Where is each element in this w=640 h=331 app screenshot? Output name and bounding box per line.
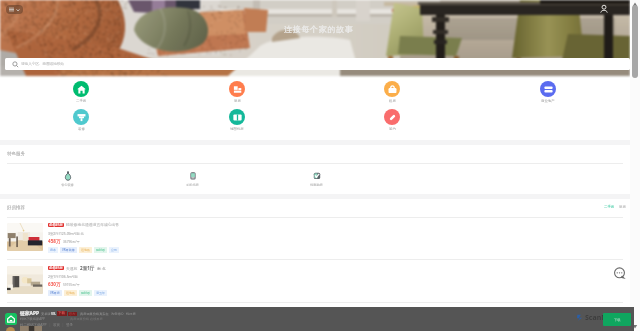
staticText: 真房源真价格真实在: [80, 312, 109, 316]
staticText: 链家APP: [20, 310, 39, 317]
button[interactable]: 在线咨询: [608, 262, 630, 284]
button[interactable]: 商业地产: [522, 79, 574, 106]
staticText: 特色服务: [7, 151, 25, 157]
staticText: 二手房: [76, 99, 87, 103]
button[interactable]: 优惠购房: [276, 164, 356, 194]
button[interactable]: 请输入小区、商圈或地铁站: [5, 58, 630, 70]
staticText: 地图找房: [230, 127, 244, 131]
button[interactable]: 二手房: [55, 79, 107, 106]
staticText: VR看装修: [62, 248, 75, 252]
staticText: 458万: [48, 238, 61, 244]
staticText: 必看好房: [49, 223, 63, 227]
staticText: 随时看: [81, 291, 90, 295]
staticText: 630万: [48, 281, 61, 287]
staticText: 优惠购房: [310, 183, 323, 187]
staticText: 下载: [614, 318, 621, 322]
staticText: 公司: [111, 248, 117, 252]
staticText: 随时看: [96, 248, 105, 252]
staticText: V8.: [51, 311, 57, 316]
button[interactable]: 省心装修: [27, 164, 107, 194]
button[interactable]: 装修: [55, 107, 107, 134]
staticText: 房本: [50, 248, 56, 252]
staticText: 首页: [53, 323, 60, 327]
staticText: 签约: [389, 127, 396, 131]
button[interactable]: 地图找房: [211, 107, 263, 134]
button[interactable]: 二手房: [602, 203, 617, 211]
staticText: 36796元/平: [63, 240, 80, 244]
button[interactable]: 新房: [617, 203, 628, 211]
staticText: 真房源真价格 在线看房: [70, 317, 103, 321]
staticText: 新房: [234, 99, 241, 103]
staticText: 下载: [58, 311, 66, 316]
button[interactable]: 链家APP: [5, 313, 17, 325]
button[interactable]: 下载: [603, 313, 631, 326]
staticText: 二手房: [604, 205, 615, 209]
staticText: 租房: [389, 99, 396, 103]
staticText: 商业地产: [541, 99, 555, 103]
staticText: 59155元/平: [63, 283, 80, 287]
staticText: 官方: [69, 312, 76, 316]
staticText: 省心装修: [61, 183, 74, 187]
staticText: 必看好房: [49, 266, 63, 270]
staticText: 装修: [78, 127, 85, 131]
button[interactable]: 必看好房: [0, 260, 640, 303]
staticText: VR看房: [50, 291, 60, 295]
staticText: 3室2厅/125.09m²/南 北: [48, 231, 84, 236]
staticText: 好房推荐: [7, 205, 25, 211]
staticText: ScanMalware: [585, 313, 632, 323]
button[interactable]: 新房: [211, 79, 263, 106]
staticText: 2室1厅: [80, 265, 95, 271]
staticText: 为您省心: [111, 312, 124, 316]
staticText: 精装修南北通透满五年诚心出售: [66, 222, 120, 227]
staticText: 天通苑: [66, 266, 78, 271]
button[interactable]: 手机找房: [152, 164, 232, 194]
staticText: 2室1厅/106.5m²/南: [48, 274, 78, 279]
staticText: 找好房: [126, 312, 136, 316]
staticText: 南 北: [97, 266, 106, 271]
staticText: 扫二维码下载APP: [20, 322, 47, 327]
staticText: 近地铁: [81, 248, 90, 252]
staticText: 安卓版: [41, 312, 51, 316]
staticText: 登录: [66, 323, 73, 327]
button[interactable]: 我的: [598, 3, 610, 15]
button[interactable]: 签约: [366, 107, 418, 134]
staticText: 新房: [619, 205, 626, 209]
staticText: 手机找房: [186, 183, 199, 187]
button[interactable]: 切换城市: [6, 5, 23, 14]
staticText: 满五年: [96, 291, 105, 295]
staticText: 近地铁: [66, 291, 75, 295]
staticText: 连接每个家的故事: [284, 24, 354, 34]
staticText: 请输入小区、商圈或地铁站: [21, 62, 65, 67]
button[interactable]: 必看好房: [0, 217, 640, 260]
staticText: 扫码下载链家APP: [20, 317, 46, 321]
button[interactable]: 租房: [366, 79, 418, 106]
